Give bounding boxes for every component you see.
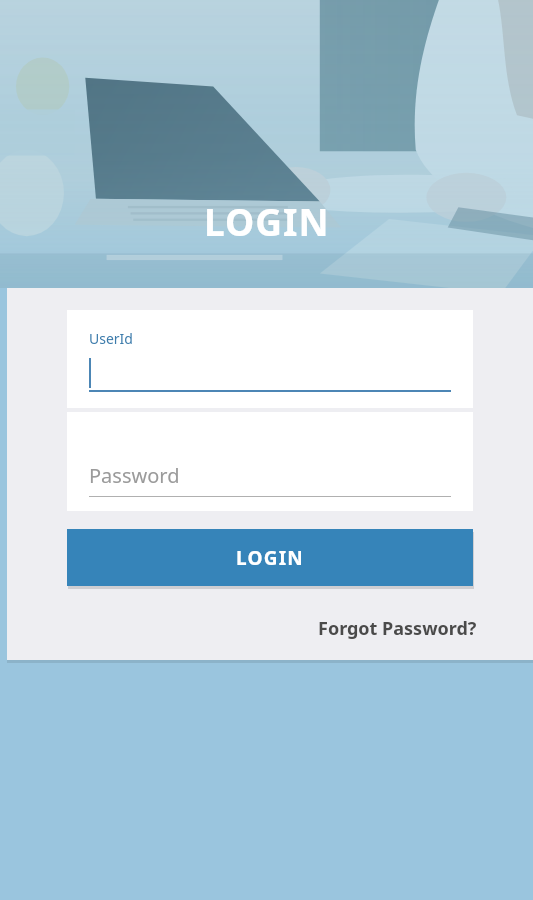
button[interactable]: UserId [67, 310, 473, 408]
staticText: LOGIN [236, 545, 304, 571]
button[interactable]: LOGIN [67, 529, 473, 586]
staticText: UserId [89, 329, 133, 348]
staticText: Forgot Password? [318, 616, 477, 641]
staticText: Password [89, 462, 180, 489]
button[interactable]: Password [67, 412, 473, 511]
staticText: LOGIN [204, 196, 330, 246]
button[interactable]: Forgot Password? [314, 612, 481, 645]
